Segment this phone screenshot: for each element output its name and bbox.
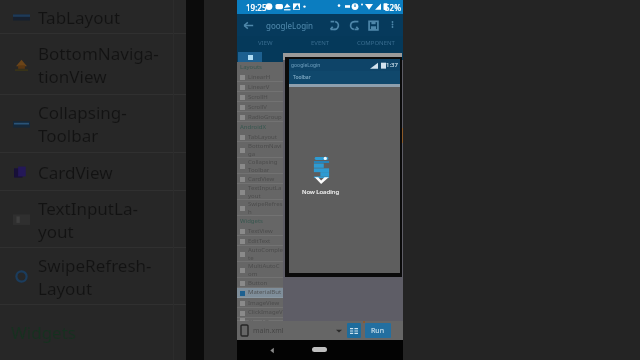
button[interactable]: main.xml — [241, 324, 341, 337]
button[interactable]: Collapsing- — [0, 95, 186, 153]
staticText: BottomNaviga- — [38, 42, 159, 65]
staticText: ScrollV — [248, 103, 267, 111]
staticText: TabLayout — [248, 133, 277, 141]
button[interactable]: Layout options — [347, 323, 361, 338]
staticText: TabLayout — [38, 6, 121, 29]
button[interactable]: EditText — [237, 236, 283, 246]
staticText: Layouts — [240, 63, 262, 71]
staticText: yout — [248, 192, 261, 200]
staticText: Button — [248, 279, 268, 287]
staticText: Toolbar — [38, 124, 99, 147]
staticText: EVENT — [311, 39, 330, 47]
staticText: AndroidX — [240, 123, 266, 131]
staticText: SwipeRefresh- — [38, 254, 152, 277]
button[interactable]: More options — [388, 20, 397, 29]
staticText: CheckBox — [248, 318, 276, 321]
button[interactable]: ScrollV — [237, 102, 283, 112]
staticText: LinearH — [248, 73, 271, 81]
staticText: Collapsing — [248, 158, 278, 166]
button[interactable]: TabLayout — [237, 132, 283, 142]
staticText: Widgets — [240, 217, 263, 225]
button[interactable]: Home — [312, 347, 327, 352]
staticText: 52% — [385, 2, 401, 13]
button[interactable]: CheckBox — [237, 318, 283, 321]
staticText: EditText — [248, 237, 271, 245]
button[interactable]: RadioGroup — [237, 112, 283, 122]
staticText: Layout — [38, 277, 93, 300]
button[interactable]: Redo — [348, 19, 361, 32]
staticText: 19:25 — [246, 2, 267, 13]
staticText: CardView — [38, 161, 113, 184]
staticText: TextInputLa- — [38, 197, 138, 220]
button[interactable]: Run — [365, 323, 391, 338]
staticText: RadioGroup — [248, 113, 282, 121]
staticText: BottomNaviga — [248, 142, 283, 158]
staticText: COMPONENT — [357, 39, 395, 47]
staticText: TextView — [248, 227, 273, 235]
button[interactable] — [238, 52, 262, 62]
button[interactable]: MultiAutoCom — [237, 262, 283, 278]
staticText: Widgets — [11, 321, 76, 344]
button[interactable]: Collapsing — [237, 158, 283, 174]
button[interactable]: TextInputLa- — [0, 191, 186, 248]
staticText: CardView — [248, 175, 275, 183]
button[interactable]: AutoComplete — [237, 246, 283, 262]
staticText: Now Loading — [302, 188, 340, 196]
staticText: MultiAutoCom — [248, 262, 283, 278]
button[interactable]: ImageView — [237, 298, 283, 308]
staticText: Run — [371, 326, 385, 336]
staticText: AutoComplete — [248, 246, 283, 262]
button[interactable]: Save — [367, 19, 380, 32]
staticText: Toolbar — [248, 166, 270, 174]
staticText: main.xml — [253, 326, 284, 336]
staticText: yout — [38, 220, 74, 243]
button[interactable]: Button — [237, 278, 283, 288]
button[interactable]: EVENT — [293, 36, 348, 50]
button[interactable]: Layouts — [237, 62, 283, 72]
button[interactable]: CardView — [237, 174, 283, 184]
staticText: googleLogin — [266, 20, 314, 31]
staticText: 1:37 — [386, 61, 398, 69]
button[interactable]: MaterialButton — [237, 288, 283, 298]
button[interactable]: TextInputLa — [237, 184, 283, 200]
staticText: SwipeRefresh — [248, 200, 283, 216]
button[interactable]: LinearV — [237, 82, 283, 92]
button[interactable]: SwipeRefresh- — [0, 248, 186, 305]
button[interactable]: ClickImageView — [237, 308, 283, 318]
button[interactable]: LinearH — [237, 72, 283, 82]
button[interactable]: AndroidX — [237, 122, 283, 132]
button[interactable]: CardView — [0, 153, 186, 191]
staticText: TextInputLa — [248, 184, 282, 192]
button[interactable]: TabLayout — [0, 0, 186, 34]
staticText: googleLogin — [291, 62, 321, 69]
staticText: ClickImageView — [248, 308, 283, 318]
button[interactable]: COMPONENT — [348, 36, 403, 50]
staticText: MaterialButton — [248, 288, 283, 298]
button[interactable]: Back — [267, 345, 278, 356]
button[interactable]: Undo — [328, 19, 341, 32]
staticText: Toolbar — [293, 74, 311, 81]
staticText: tionView — [38, 65, 107, 88]
staticText: VIEW — [258, 39, 273, 47]
button[interactable]: TextView — [237, 226, 283, 236]
button[interactable]: Widgets — [237, 216, 283, 226]
staticText: Collapsing- — [38, 101, 127, 124]
staticText: ImageView — [248, 299, 280, 307]
staticText: ScrollH — [248, 93, 268, 101]
button[interactable]: SwipeRefresh — [237, 200, 283, 216]
button[interactable]: VIEW — [237, 36, 293, 50]
staticText: LinearV — [248, 83, 270, 91]
button[interactable]: ScrollH — [237, 92, 283, 102]
button[interactable]: BottomNaviga- — [0, 34, 186, 95]
button[interactable]: Navigate up — [242, 19, 255, 32]
button[interactable]: BottomNaviga — [237, 142, 283, 158]
